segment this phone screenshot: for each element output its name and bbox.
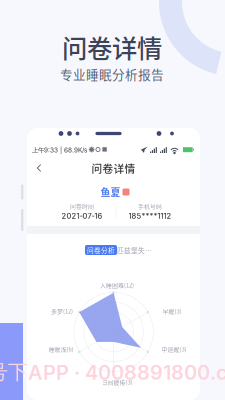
button[interactable]: 匹兹堡失眠自评	[117, 245, 158, 255]
staticText: 上午9:33 | 68.9K/s	[32, 146, 87, 154]
staticText: 问卷分析	[87, 245, 115, 255]
staticText: 睡眠浅(6)	[48, 345, 73, 353]
staticText: 多梦(12)	[51, 307, 73, 315]
button[interactable]: 问卷分析	[85, 245, 117, 255]
staticText: 日间疲倦(3)	[101, 378, 132, 386]
staticText: 入睡困难(12)	[100, 281, 134, 289]
staticText: 手机号码	[138, 202, 162, 210]
staticText: 问卷时间	[70, 202, 94, 210]
staticText: 185****1112	[128, 211, 171, 220]
staticText: 中途醒(3)	[161, 345, 186, 353]
staticText: 问卷详情	[62, 29, 162, 65]
button[interactable]: 返回	[32, 159, 46, 176]
staticText: 鱼夏	[100, 185, 120, 199]
staticText: 专业睡眠分析报告	[60, 65, 164, 83]
staticText: 早醒(3)	[162, 307, 181, 315]
staticText: 问卷详情	[91, 160, 135, 176]
staticText: 号下APP · 4008891800.c	[0, 359, 225, 385]
staticText: 匹兹堡失眠自评	[117, 245, 158, 255]
staticText: 2021-07-16	[61, 211, 102, 220]
